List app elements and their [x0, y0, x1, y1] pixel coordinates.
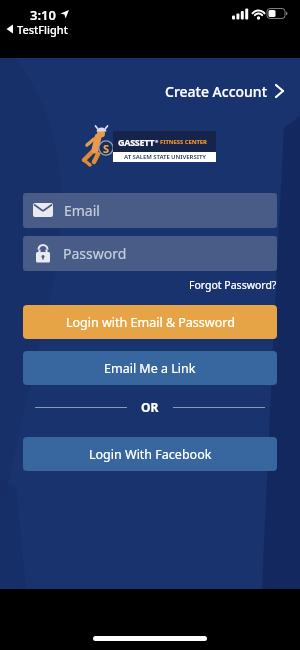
- staticText: S: [103, 141, 110, 156]
- staticText: AT SALEM STATE UNIVERSITY: [124, 153, 206, 161]
- staticText: Forgot Password?: [189, 278, 277, 292]
- button[interactable]: Create Account: [160, 78, 288, 104]
- staticText: Login with Email & Password: [66, 314, 235, 331]
- staticText: Login With Facebook: [89, 446, 212, 463]
- button[interactable]: Login with Email & Password: [23, 305, 277, 339]
- staticText: TestFlight: [17, 22, 68, 37]
- staticText: Password: [63, 244, 127, 263]
- staticText: 3:10: [30, 6, 56, 24]
- staticText: Email: [64, 201, 100, 220]
- button[interactable]: Forgot Password?: [177, 276, 277, 294]
- staticText: FITNESS CENTER: [160, 138, 207, 146]
- staticText: Email Me a Link: [104, 360, 196, 377]
- button[interactable]: Login With Facebook: [23, 437, 277, 471]
- staticText: GASSETT: [118, 136, 155, 148]
- staticText: ®: [155, 139, 160, 144]
- button[interactable]: Email Me a Link: [23, 351, 277, 385]
- button[interactable]: Password: [23, 236, 277, 271]
- staticText: OR: [141, 399, 159, 415]
- button[interactable]: Email: [23, 193, 277, 228]
- staticText: Create Account: [165, 82, 268, 101]
